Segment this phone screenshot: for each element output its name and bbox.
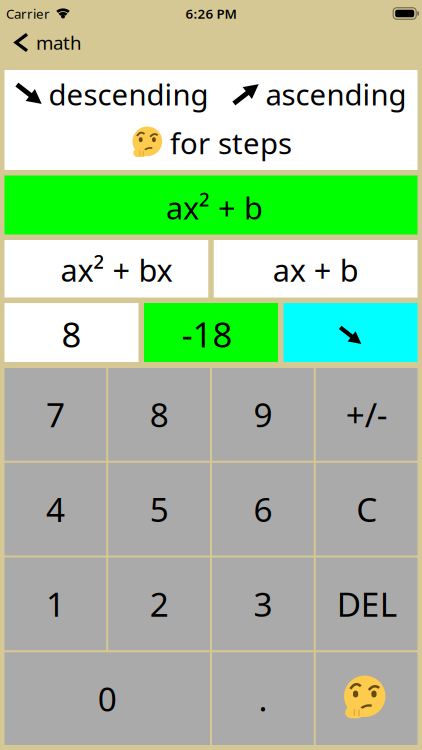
staticText: 6:26 PM bbox=[185, 5, 236, 22]
button[interactable]: 4 bbox=[4, 463, 106, 556]
button[interactable]: ax² + b bbox=[4, 175, 417, 234]
staticText: ax + b bbox=[273, 249, 359, 290]
staticText: C bbox=[356, 487, 377, 531]
button[interactable]: Back to math bbox=[0, 30, 82, 55]
staticText: 3 bbox=[253, 582, 272, 626]
button[interactable]: 2 bbox=[108, 557, 210, 650]
staticText: 6 bbox=[253, 487, 272, 531]
staticText: ax² + bx bbox=[60, 249, 172, 290]
staticText: 8 bbox=[150, 392, 169, 436]
staticText: ax² + b bbox=[166, 187, 263, 228]
staticText: 8 bbox=[61, 311, 81, 357]
button[interactable]: for steps bbox=[130, 126, 292, 165]
button[interactable]: 9 bbox=[212, 368, 314, 461]
button[interactable]: descending bbox=[283, 303, 417, 362]
staticText: 9 bbox=[253, 392, 272, 436]
staticText: 0 bbox=[98, 676, 117, 721]
button[interactable]: 6 bbox=[212, 463, 314, 556]
button[interactable]: descending bbox=[15, 74, 208, 113]
button[interactable]: ax + b bbox=[214, 240, 418, 297]
button[interactable]: ascending bbox=[232, 74, 406, 113]
staticText: 1 bbox=[46, 582, 65, 626]
staticText: ascending bbox=[265, 74, 406, 113]
button[interactable]: show steps bbox=[316, 652, 418, 745]
button[interactable]: +/- bbox=[316, 368, 418, 461]
staticText: math bbox=[36, 30, 82, 55]
staticText: 4 bbox=[46, 487, 65, 531]
button[interactable]: . bbox=[212, 652, 314, 745]
button[interactable]: DEL bbox=[316, 557, 418, 650]
button[interactable]: ax² + bx bbox=[4, 240, 208, 297]
button[interactable]: 1 bbox=[4, 557, 106, 650]
staticText: 2 bbox=[150, 582, 169, 626]
button[interactable]: 5 bbox=[108, 463, 210, 556]
button[interactable]: -18 bbox=[144, 303, 278, 362]
button[interactable]: C bbox=[316, 463, 418, 556]
staticText: 5 bbox=[150, 487, 169, 531]
staticText: for steps bbox=[170, 123, 292, 162]
staticText: descending bbox=[48, 74, 208, 113]
staticText: . bbox=[258, 676, 267, 721]
button[interactable]: 8 bbox=[108, 368, 210, 461]
staticText: +/- bbox=[346, 392, 388, 436]
button[interactable]: 8 bbox=[4, 303, 138, 362]
button[interactable]: 7 bbox=[4, 368, 106, 461]
button[interactable]: 0 bbox=[4, 652, 210, 745]
staticText: -18 bbox=[181, 311, 232, 357]
staticText: Carrier bbox=[6, 5, 50, 22]
staticText: DEL bbox=[337, 582, 397, 626]
button[interactable]: 3 bbox=[212, 557, 314, 650]
staticText: 7 bbox=[46, 392, 65, 436]
